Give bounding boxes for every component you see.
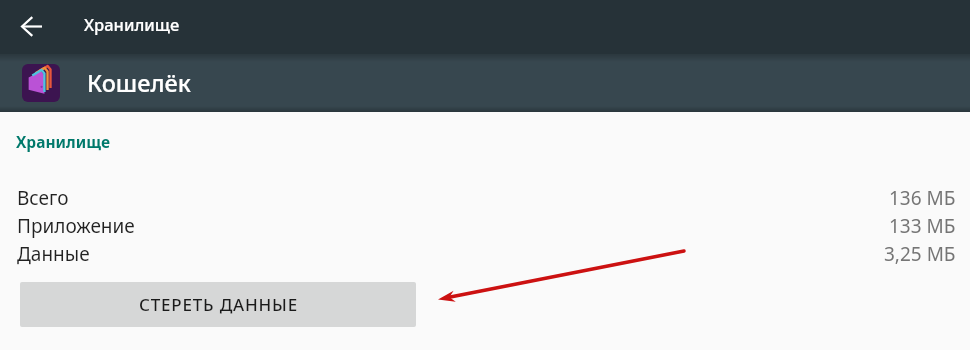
staticText: 133 МБ — [889, 213, 956, 239]
staticText: Приложение — [17, 213, 135, 239]
staticText: 3,25 МБ — [884, 241, 956, 267]
staticText: Хранилище — [16, 131, 110, 152]
staticText: Кошелёк — [87, 67, 191, 99]
staticText: 136 МБ — [889, 185, 956, 211]
staticText: Хранилище — [84, 13, 180, 35]
button[interactable]: Back — [0, 0, 64, 54]
staticText: Данные — [17, 241, 90, 267]
staticText: СТЕРЕТЬ ДАННЫЕ — [139, 293, 298, 316]
staticText: Всего — [17, 185, 69, 211]
button[interactable]: СТЕРЕТЬ ДАННЫЕ — [20, 282, 416, 327]
